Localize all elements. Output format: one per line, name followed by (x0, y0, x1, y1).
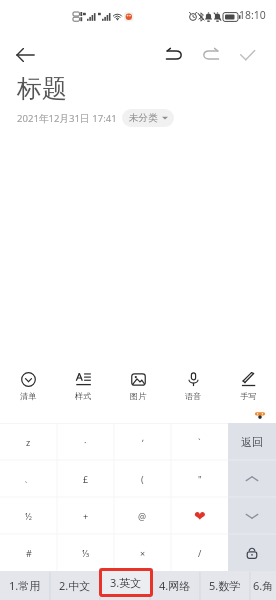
staticText: 、 (24, 473, 33, 484)
staticText: ʼ (142, 436, 144, 448)
staticText: 3.英文 (109, 578, 141, 593)
button[interactable]: Back (228, 423, 276, 460)
staticText: · (84, 436, 87, 448)
staticText: ( (141, 473, 144, 485)
button[interactable]: ½ (0, 497, 57, 534)
staticText: ˋ (198, 436, 201, 448)
staticText: 清单 (20, 391, 37, 401)
button[interactable]: Lock (228, 534, 276, 571)
staticText: " (198, 473, 202, 485)
button[interactable]: 图片 (111, 372, 166, 401)
button[interactable]: / (171, 534, 228, 571)
button[interactable]: 清单 (1, 372, 56, 401)
button[interactable]: Redo (192, 38, 229, 72)
staticText: 返回 (241, 435, 263, 449)
button[interactable]: 6.角 (250, 571, 276, 600)
button[interactable]: £ (57, 460, 114, 497)
staticText: ❤ (194, 508, 206, 524)
staticText: 2021年12月31日 17:41 (17, 112, 117, 125)
button[interactable]: ( (114, 460, 171, 497)
staticText: 18:10 (239, 8, 266, 22)
button[interactable]: ʼ (114, 423, 171, 460)
button[interactable]: × (114, 534, 171, 571)
button[interactable]: 语音 (166, 372, 221, 401)
button[interactable]: 3.英文 (100, 571, 150, 600)
button[interactable]: Done (229, 38, 266, 72)
button[interactable]: 2.中文 (50, 571, 100, 600)
button[interactable]: Page up (228, 460, 276, 497)
button[interactable]: z (0, 423, 57, 460)
staticText: 4.网络 (159, 578, 191, 593)
button[interactable]: 手写 (221, 372, 276, 401)
button[interactable]: Back (10, 40, 40, 70)
staticText: 标题 (17, 73, 67, 104)
staticText: £ (83, 473, 89, 485)
staticText: 语音 (185, 391, 202, 401)
staticText: # (26, 547, 32, 559)
button[interactable]: ❤ (171, 497, 228, 534)
button[interactable]: ˋ (171, 423, 228, 460)
button[interactable]: 1.常用 (0, 571, 50, 600)
button[interactable]: " (171, 460, 228, 497)
staticText: 1.常用 (9, 578, 41, 593)
staticText: @ (138, 510, 147, 522)
staticText: 6.角 (253, 578, 274, 593)
button[interactable]: 4.网络 (150, 571, 200, 600)
staticText: 未分类 (129, 112, 158, 124)
staticText: / (198, 547, 202, 559)
button[interactable]: 5.数学 (200, 571, 250, 600)
button[interactable]: 未分类 (122, 109, 174, 127)
button[interactable]: Emoji (253, 407, 267, 421)
staticText: + (83, 510, 89, 522)
button[interactable]: 样式 (56, 372, 111, 401)
staticText: 样式 (75, 391, 92, 401)
staticText: z (26, 436, 31, 448)
button[interactable]: Undo (155, 38, 192, 72)
button[interactable]: # (0, 534, 57, 571)
staticText: 手写 (240, 391, 257, 401)
button[interactable]: · (57, 423, 114, 460)
button[interactable]: + (57, 497, 114, 534)
staticText: 2.中文 (59, 578, 91, 593)
staticText: ⅓ (82, 547, 90, 559)
button[interactable]: @ (114, 497, 171, 534)
staticText: 5.数学 (209, 578, 241, 593)
staticText: 图片 (130, 391, 147, 401)
button[interactable]: Page down (228, 497, 276, 534)
staticText: ½ (25, 510, 32, 522)
staticText: 3.英文 (110, 575, 142, 590)
button[interactable]: ⅓ (57, 534, 114, 571)
staticText: × (140, 547, 146, 559)
